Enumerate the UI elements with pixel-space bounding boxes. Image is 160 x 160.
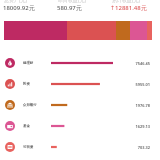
- staticText: 1629.13: [131, 124, 150, 129]
- staticText: 703.32: [131, 145, 150, 150]
- staticText: 昨日收益(元): [58, 0, 87, 4]
- button[interactable]: 稳理财: [0, 53, 160, 73]
- staticText: 众邦银行: [23, 103, 37, 107]
- button[interactable]: 众邦银行: [0, 95, 160, 115]
- staticText: 稳理财: [23, 61, 34, 65]
- staticText: 可转债: [23, 145, 34, 149]
- staticText: ↑12881.48元: [110, 4, 147, 12]
- staticText: 1976.78: [131, 103, 150, 108]
- button[interactable]: 可转债: [0, 137, 160, 157]
- button[interactable]: 投资: [0, 74, 160, 94]
- staticText: 总资产(元): [4, 0, 28, 4]
- staticText: 7546.45: [131, 61, 150, 66]
- staticText: 580.97元: [57, 4, 82, 12]
- staticText: 5955.01: [131, 82, 150, 87]
- button[interactable]: 基金: [0, 116, 160, 136]
- staticText: 18009.92元: [3, 4, 35, 12]
- staticText: 基金: [23, 124, 30, 128]
- staticText: 投资: [23, 82, 30, 86]
- staticText: 累计收益(元): [112, 0, 141, 4]
